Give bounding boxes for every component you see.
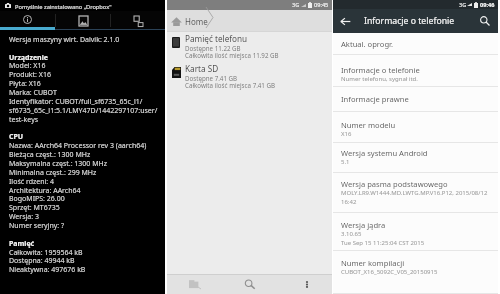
staticText: 3.10.65 Tue Sep 15 11:25:04 CST 2015 (341, 230, 425, 247)
staticText: Maksymalna częst.: 1300 MHz (9, 159, 107, 169)
staticText: 09:45 (314, 1, 329, 9)
button[interactable]: New folder (167, 275, 222, 294)
button[interactable]: Pamięć telefonu (167, 32, 332, 62)
button[interactable]: Aktual. oprogr. (333, 33, 498, 55)
staticText: Dostępna: 49944 kB (9, 256, 75, 266)
staticText: Wersja pasma podstawowego (341, 179, 448, 189)
staticText: Minimalna częst.: 299 MHz (9, 168, 97, 178)
staticText: Pamięć telefonu (185, 33, 248, 44)
staticText: Informacje prawne (341, 94, 409, 104)
button[interactable]: Back (333, 9, 357, 33)
staticText: Dostępne 7.41 GB (185, 74, 238, 82)
staticText: Ilość rdzeni: 4 (9, 177, 55, 187)
staticText: Sprzęt: MT6735 (9, 203, 60, 213)
staticText: Identyfikator: CUBOT/full_sf6735_65c_l1/ (9, 97, 143, 107)
staticText: Aktual. oprogr. (341, 39, 394, 49)
button[interactable]: More options (277, 275, 332, 294)
staticText: Nieaktywna: 497676 kB (9, 265, 86, 275)
staticText: Wersja maszyny wirt. Dalvik: 2.1.0 (9, 35, 120, 45)
button[interactable]: Wersja pasma podstawowego (333, 173, 498, 213)
staticText: Wersja: 3 (9, 212, 39, 222)
staticText: Całkowita: 1959564 kB (9, 248, 83, 258)
staticText: Urządzenie (9, 53, 48, 63)
staticText: Numer seryjny: ? (9, 221, 65, 231)
staticText: Pomyślnie zainstalowano „Dropbox" (15, 3, 112, 11)
button[interactable]: Informacje prawne (333, 87, 498, 112)
staticText: Numer modelu (341, 120, 396, 130)
staticText: BogoMIPS: 26.00 (9, 194, 65, 204)
button[interactable]: Wersja jądra (333, 213, 498, 251)
staticText: Home (185, 16, 208, 27)
staticText: MOLY.LR9.W1444.MD.LWTG.MP.V16.P12, 2015/… (341, 189, 488, 206)
staticText: Bieżąca częst.: 1300 MHz (9, 150, 91, 160)
button[interactable]: Search (222, 275, 277, 294)
staticText: test-keys (9, 115, 39, 125)
staticText: Marka: CUBOT (9, 88, 57, 98)
staticText: Informacje o telefonie (364, 15, 455, 27)
button[interactable]: Karta SD (167, 62, 332, 92)
staticText: 3G (459, 1, 467, 9)
staticText: Architektura: AArch64 (9, 186, 81, 196)
button[interactable]: Numer kompilacji (333, 251, 498, 294)
staticText: Numer kompilacji (341, 258, 405, 268)
button[interactable]: Informacje o telefonie (333, 55, 498, 87)
staticText: Pamięć (9, 239, 35, 249)
staticText: sf6735_65c_l1:5.1/LMY47D/1442297107:user… (9, 106, 158, 116)
staticText: Numer telefonu, sygnał itd. (341, 75, 418, 83)
staticText: Informacje o telefonie (341, 65, 420, 75)
staticText: Model: X16 (9, 61, 46, 71)
staticText: Produkt: X16 (9, 70, 51, 80)
button[interactable]: Search (473, 9, 497, 33)
button[interactable]: Numer modelu (333, 112, 498, 143)
staticText: Całkowita ilość miejsca 11.92 GB (185, 51, 279, 59)
staticText: 3G (292, 1, 300, 9)
staticText: 09:46 (480, 1, 495, 9)
staticText: 5.1 (341, 158, 350, 166)
button[interactable]: Gallery (56, 11, 110, 30)
staticText: CPU (9, 132, 24, 142)
staticText: Karta SD (185, 63, 219, 74)
staticText: Wersja jądra (341, 220, 386, 230)
staticText: Płyta: X16 (9, 79, 41, 89)
staticText: X16 (341, 130, 352, 138)
button[interactable]: Apps (111, 11, 165, 30)
staticText: Nazwa: AArch64 Processor rev 3 (aarch64) (9, 141, 147, 151)
staticText: Dostępne 11.22 GB (185, 44, 241, 52)
button[interactable]: Info (0, 11, 55, 30)
staticText: Wersja systemu Android (341, 148, 428, 158)
button[interactable]: Wersja systemu Android (333, 143, 498, 173)
button[interactable]: Home (167, 10, 332, 31)
staticText: CUBOT_X16_5092C_V05_20150915 (341, 268, 438, 276)
staticText: Całkowita ilość miejsca 7.41 GB (185, 81, 276, 89)
